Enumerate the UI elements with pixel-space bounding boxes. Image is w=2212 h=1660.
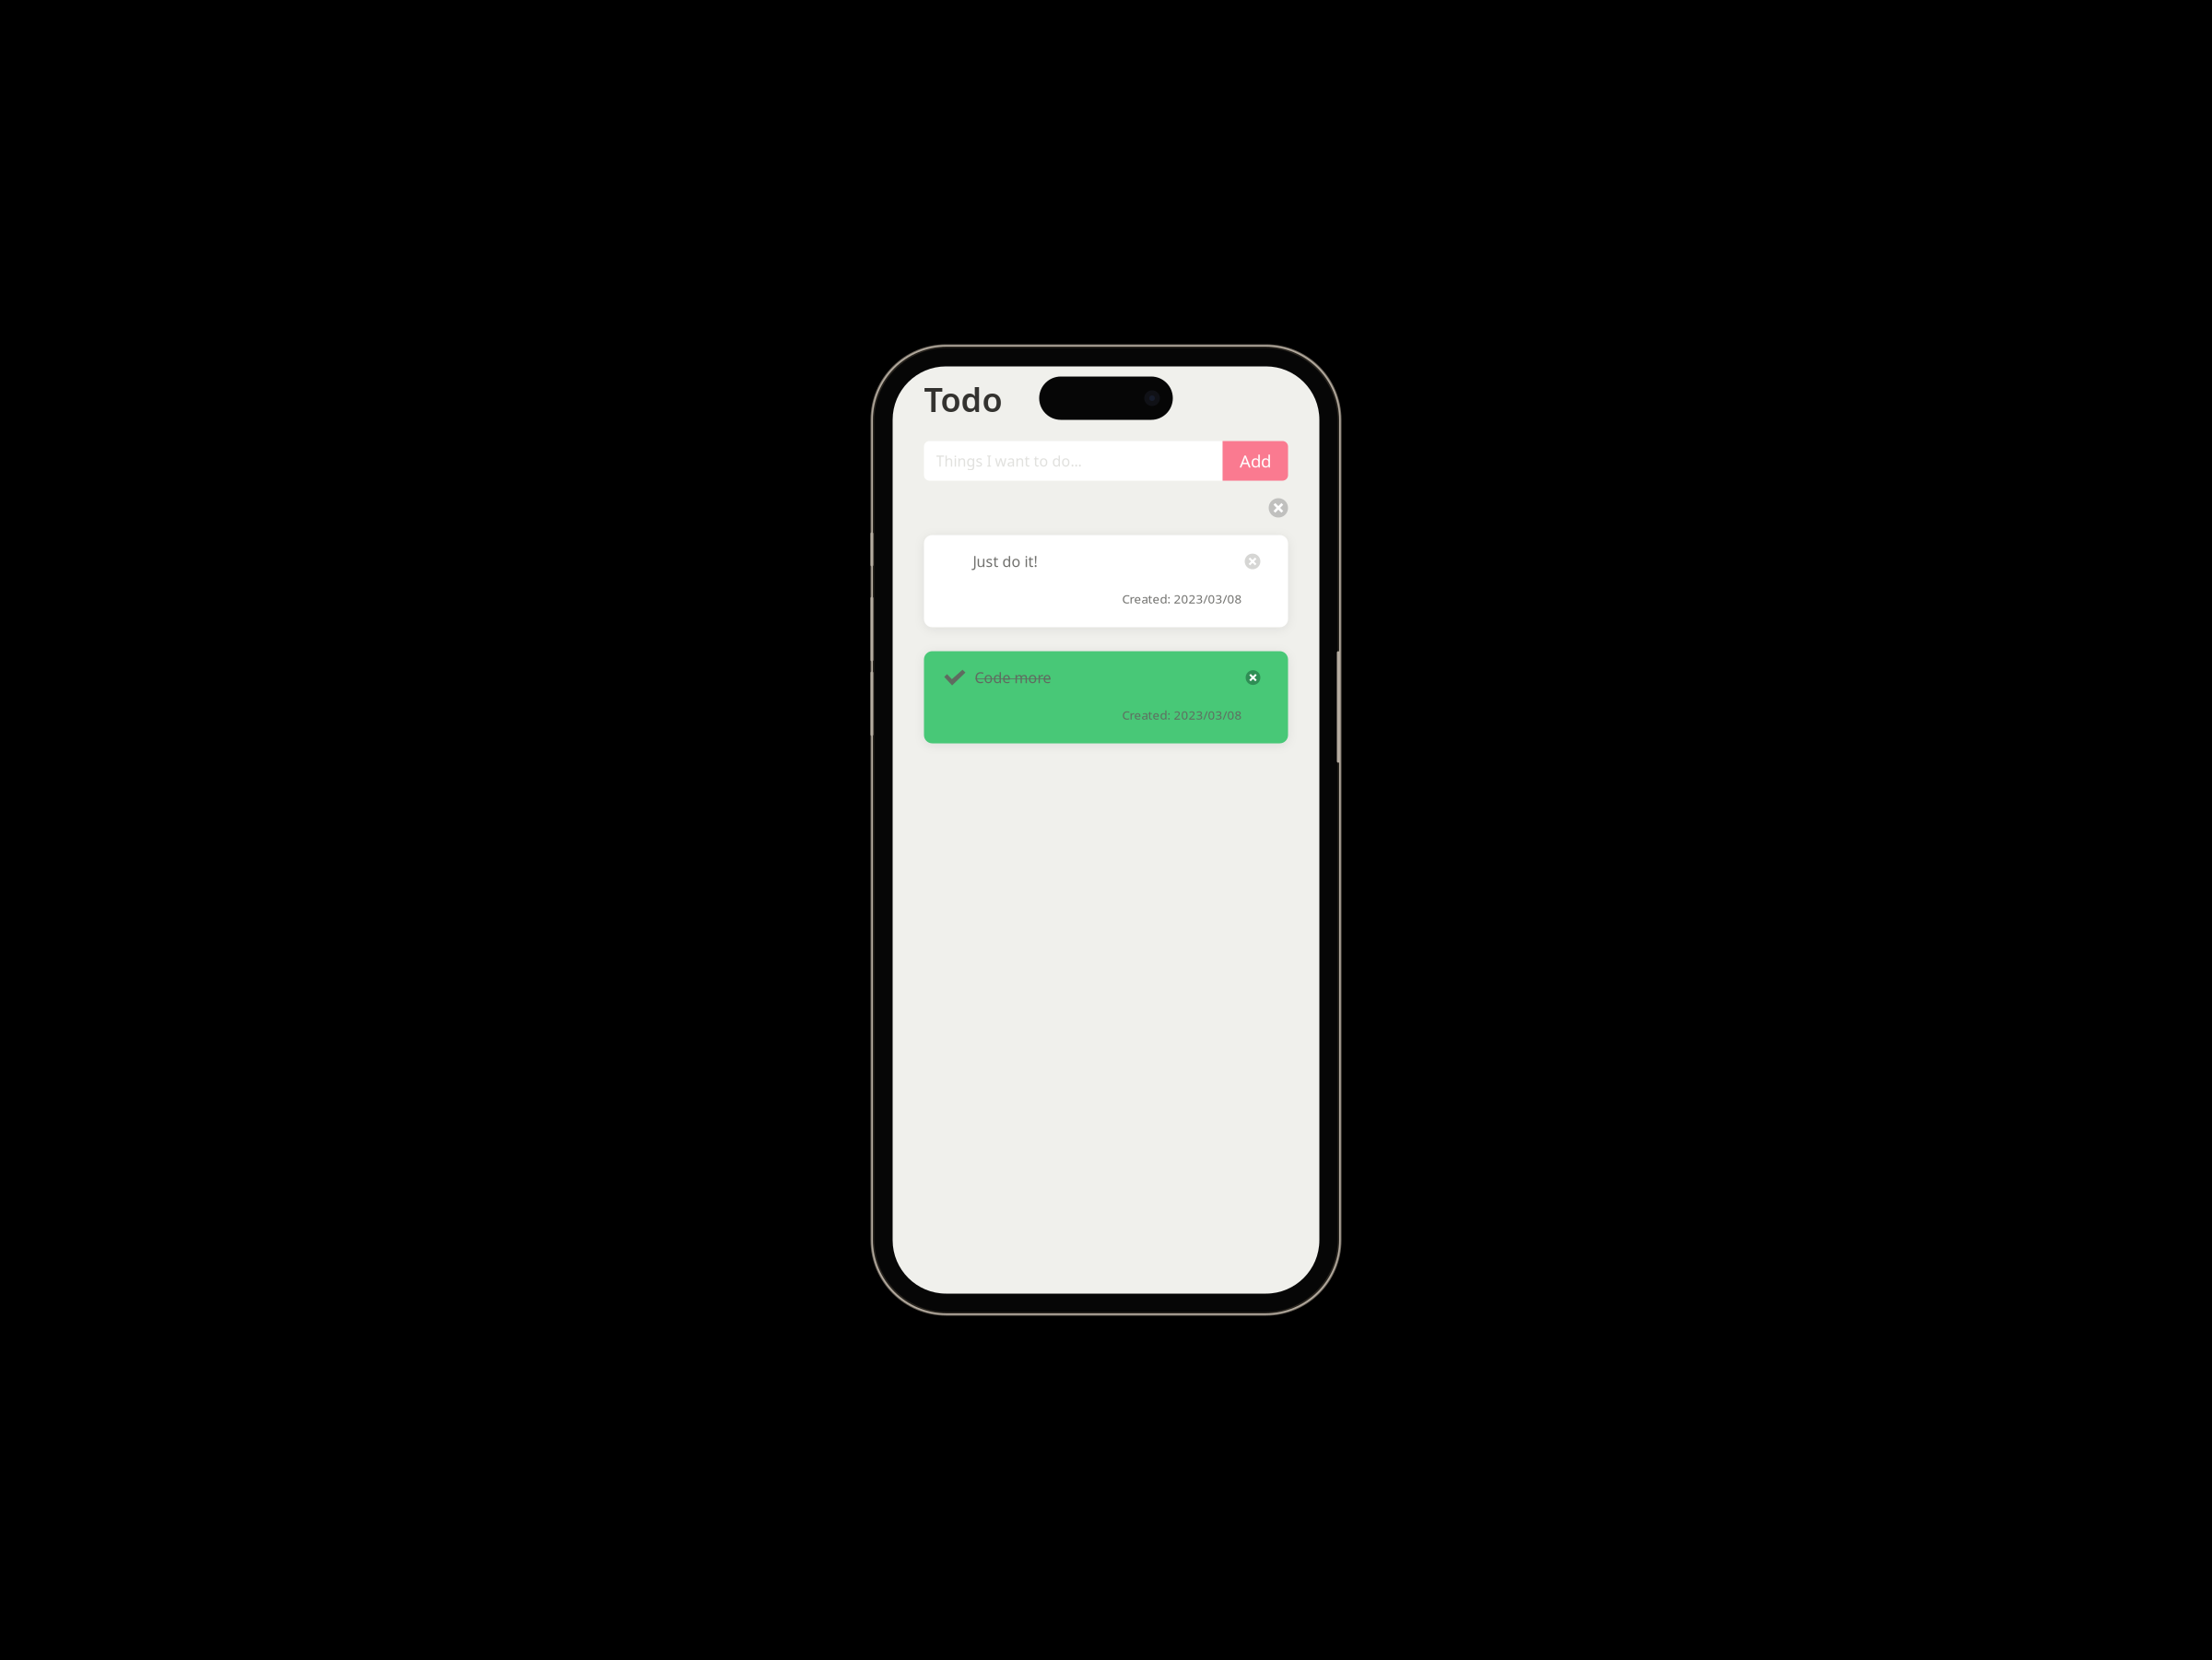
staticText: Add bbox=[1240, 449, 1271, 472]
button[interactable]: Add bbox=[1223, 441, 1288, 481]
button[interactable]: Clear completed bbox=[1269, 498, 1288, 518]
staticText: Todo bbox=[924, 377, 1002, 421]
staticText: Things I want to do... bbox=[936, 451, 1082, 471]
button[interactable]: Just do it! bbox=[924, 535, 1288, 627]
staticText: Code more bbox=[975, 668, 1051, 687]
staticText: Created: 2023/03/08 bbox=[1122, 707, 1242, 723]
staticText: Just do it! bbox=[973, 552, 1037, 571]
button[interactable]: Code more bbox=[924, 651, 1288, 743]
button[interactable]: Delete Just do it! bbox=[1245, 554, 1260, 569]
button[interactable]: Delete Code more bbox=[1246, 670, 1260, 685]
staticText: Created: 2023/03/08 bbox=[1122, 591, 1242, 607]
